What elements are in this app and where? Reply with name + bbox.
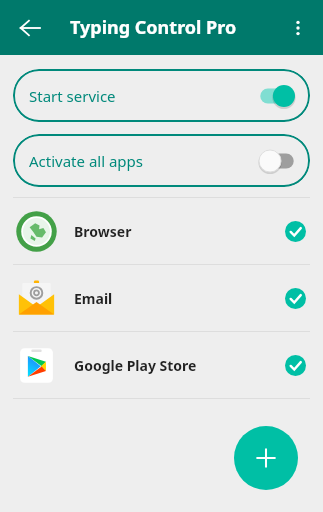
button[interactable]: Start service bbox=[13, 69, 310, 122]
staticText: Activate all apps bbox=[29, 151, 143, 171]
staticText: Typing Control Pro bbox=[70, 15, 237, 40]
staticText: Email bbox=[74, 289, 113, 308]
button[interactable]: Email bbox=[0, 265, 323, 331]
staticText: Google Play Store bbox=[74, 356, 197, 375]
button[interactable]: More options bbox=[277, 7, 319, 49]
button[interactable]: Add app bbox=[234, 426, 298, 490]
button[interactable]: Enabled bbox=[275, 211, 315, 251]
button[interactable]: Back bbox=[8, 6, 52, 50]
button[interactable]: Enabled bbox=[275, 345, 315, 385]
button[interactable]: Activate all apps bbox=[13, 134, 310, 187]
button[interactable]: Browser bbox=[0, 198, 323, 264]
button[interactable]: Enabled bbox=[275, 278, 315, 318]
staticText: Start service bbox=[29, 86, 116, 106]
button[interactable]: Google Play Store bbox=[0, 332, 323, 398]
staticText: Browser bbox=[74, 222, 132, 241]
